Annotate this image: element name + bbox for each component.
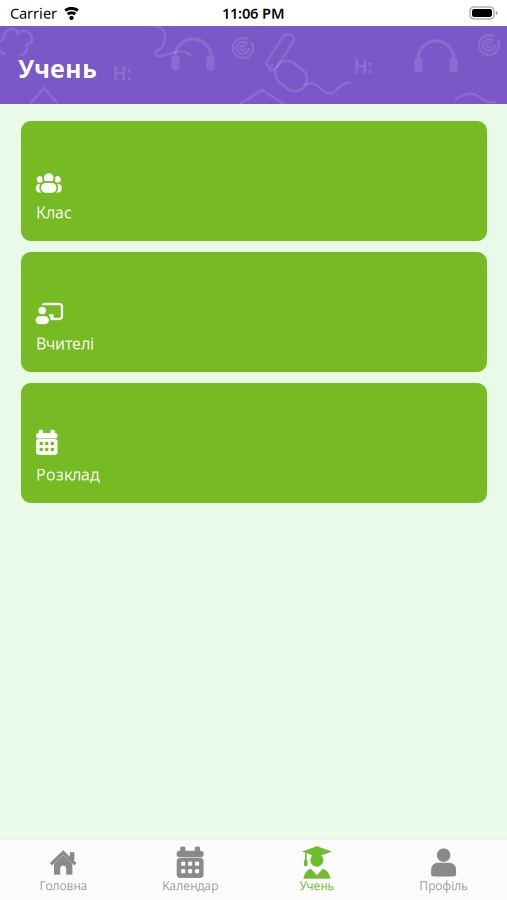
button[interactable]: Календар (127, 847, 254, 894)
button[interactable]: Профіль (380, 847, 507, 894)
staticText: H: (353, 54, 372, 78)
staticText: Розклад (36, 464, 100, 485)
staticText: Учень (18, 51, 97, 85)
staticText: Клас (36, 202, 72, 223)
button[interactable]: Клас (21, 121, 487, 241)
staticText: Профіль (419, 878, 468, 894)
button[interactable]: Головна (0, 847, 127, 894)
staticText: Вчителі (36, 333, 94, 354)
staticText: Головна (39, 878, 87, 894)
staticText: Учень (299, 878, 334, 894)
staticText: Carrier (10, 3, 57, 23)
staticText: 11:06 PM (222, 3, 285, 23)
staticText: Календар (162, 878, 218, 894)
button[interactable]: Розклад (21, 383, 487, 503)
button[interactable]: Учень (253, 847, 380, 894)
staticText: H: (112, 61, 131, 85)
button[interactable]: Вчителі (21, 252, 487, 372)
